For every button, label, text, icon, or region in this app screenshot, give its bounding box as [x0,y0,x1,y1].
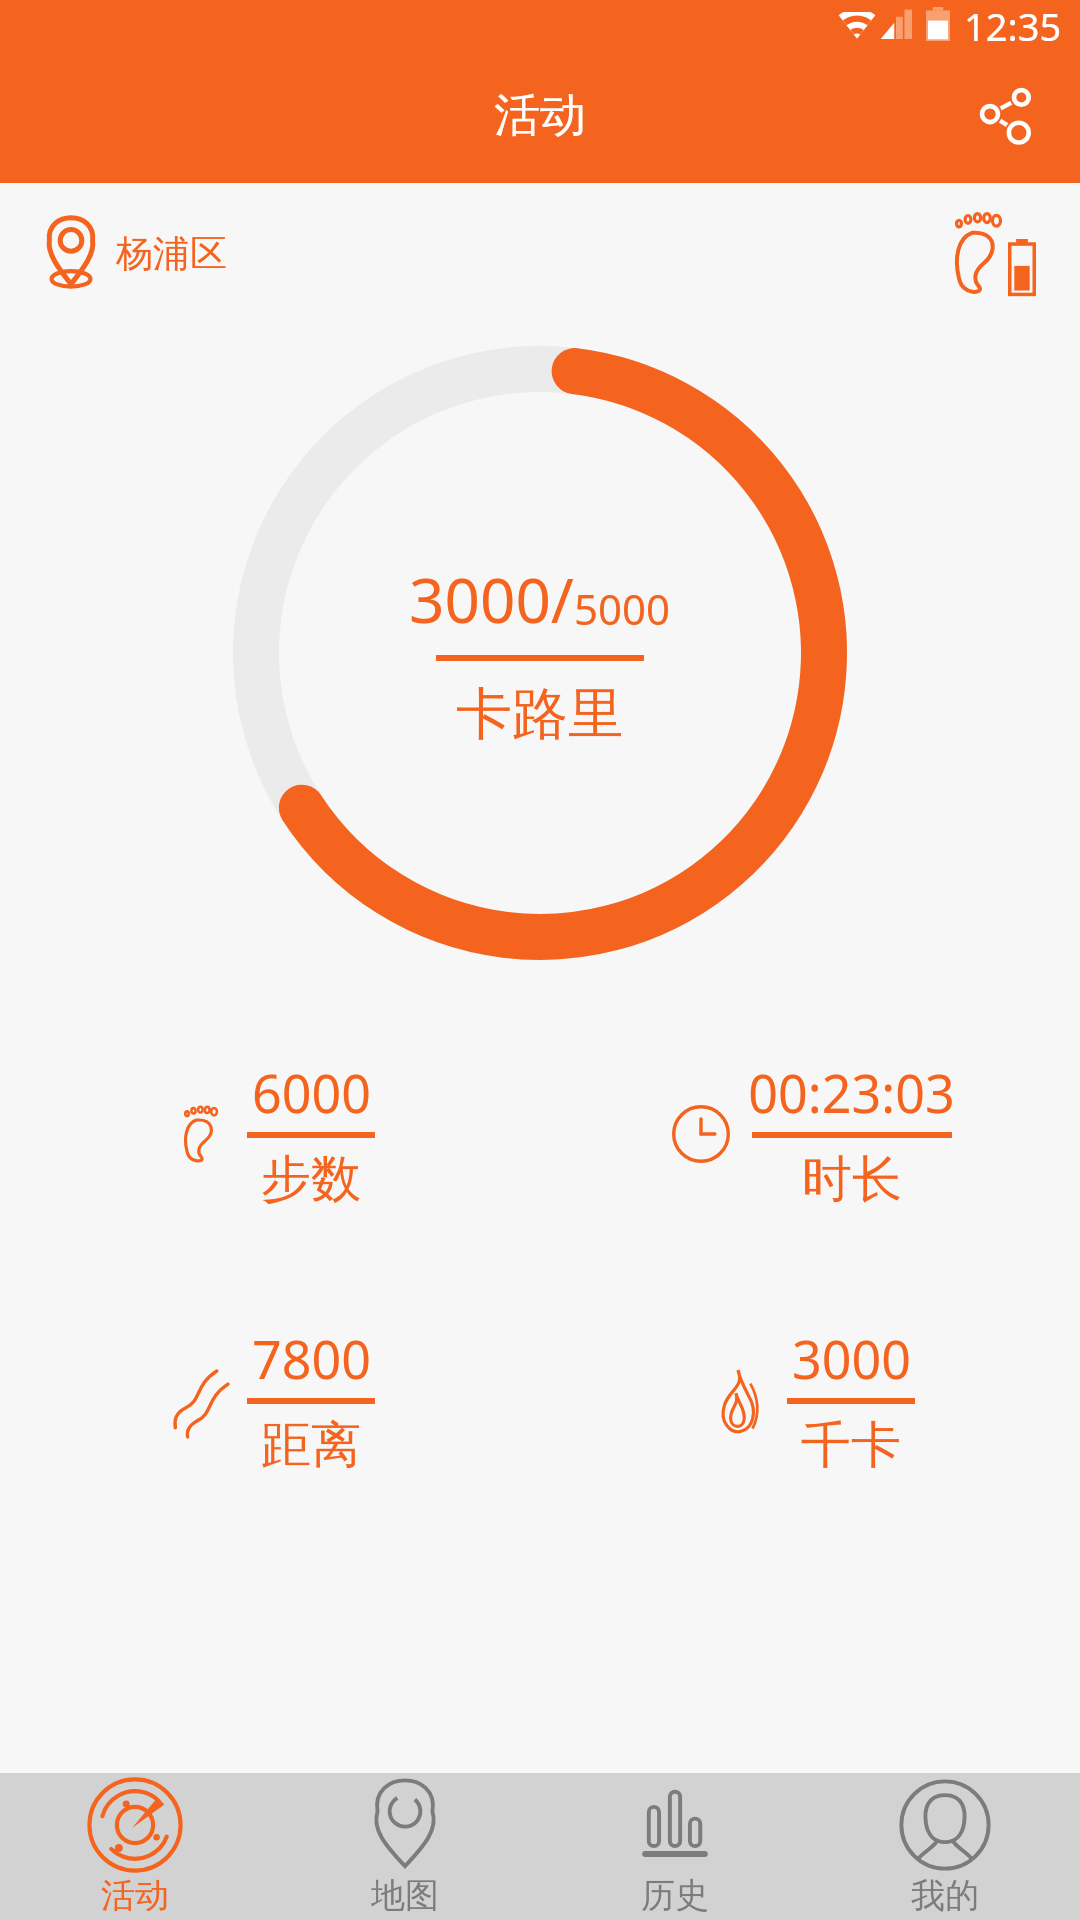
staticText: 3000/ [409,557,574,641]
staticText: 我的 [911,1874,979,1917]
staticText: 千卡 [801,1414,901,1477]
staticText: 5000 [574,580,671,637]
staticText: 12:35 [964,0,1062,48]
button[interactable]: 我的 [810,1773,1080,1920]
button[interactable]: Share [958,68,1054,164]
button[interactable]: 3000 [540,1305,1080,1495]
button[interactable]: Pedometer battery [952,211,1036,295]
staticText: 6000 [252,1057,371,1128]
button[interactable]: 历史 [540,1773,810,1920]
staticText: 活动 [494,87,586,145]
button[interactable]: 6000 [0,1039,540,1229]
button[interactable]: 地图 [270,1773,540,1920]
staticText: 步数 [261,1148,361,1211]
button[interactable]: 00:23:03 [540,1039,1080,1229]
button[interactable]: 杨浦区 [44,216,227,290]
staticText: 7800 [252,1323,371,1394]
staticText: 活动 [101,1874,169,1917]
button[interactable]: 7800 [0,1305,540,1495]
staticText: 卡路里 [456,679,624,750]
button[interactable]: 3000/ [233,346,847,960]
staticText: 地图 [371,1874,439,1917]
staticText: 杨浦区 [116,230,227,277]
button[interactable]: 活动 [0,1773,270,1920]
staticText: 距离 [261,1414,361,1477]
staticText: 历史 [641,1874,709,1917]
staticText: 3000 [792,1323,911,1394]
staticText: 00:23:03 [748,1057,955,1128]
staticText: 时长 [802,1148,902,1211]
